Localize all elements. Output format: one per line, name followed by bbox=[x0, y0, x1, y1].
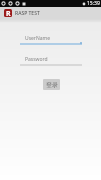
staticText: R bbox=[6, 9, 11, 17]
button[interactable]: UserName bbox=[20, 35, 82, 45]
staticText: Password bbox=[25, 56, 48, 63]
button[interactable]: Password bbox=[20, 56, 82, 66]
staticText: UserName bbox=[25, 35, 51, 42]
staticText: 15:39 bbox=[87, 0, 100, 7]
staticText: 登录 bbox=[46, 81, 58, 89]
staticText: RASP TEST bbox=[15, 10, 40, 17]
button[interactable]: Login bbox=[43, 79, 60, 90]
